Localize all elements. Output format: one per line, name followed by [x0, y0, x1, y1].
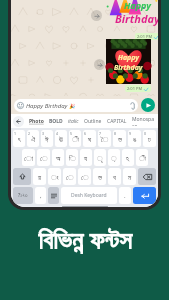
button[interactable]: 0 — [143, 130, 156, 147]
staticText: ভ — [118, 136, 122, 143]
button[interactable]: CAPITAL — [105, 116, 129, 127]
staticText: য — [84, 155, 88, 162]
button[interactable]: Happy — [103, 0, 158, 32]
staticText: 8 — [114, 131, 117, 136]
staticText: ে — [66, 174, 74, 181]
button[interactable]: Forward — [91, 10, 102, 21]
staticText: italic — [68, 118, 79, 125]
staticText: ি — [69, 155, 76, 162]
button[interactable]: 4 — [55, 130, 67, 147]
staticText: ভ — [98, 174, 102, 181]
button[interactable]: 3 — [41, 130, 53, 147]
button[interactable]: italic — [66, 116, 81, 127]
staticText: ে — [81, 174, 89, 181]
staticText: 2:01 PM — [127, 86, 143, 91]
button[interactable]: ী — [136, 149, 148, 166]
button[interactable]: 7 — [98, 130, 111, 147]
button[interactable]: ৃ — [94, 149, 106, 166]
staticText: BOLD — [49, 118, 63, 125]
staticText: 5 — [70, 131, 73, 136]
staticText: 2:01 PM — [137, 34, 153, 39]
button[interactable]: Happy Birthday — [14, 99, 138, 112]
button[interactable]: ় — [108, 149, 120, 166]
staticText: 2 — [28, 131, 31, 136]
button[interactable]: 8 — [113, 130, 126, 147]
button[interactable]: Monospace — [130, 114, 157, 128]
staticText: ় — [111, 155, 117, 162]
staticText: CAPITAL — [107, 118, 127, 125]
staticText: ী — [139, 155, 146, 162]
staticText: ম — [128, 174, 132, 181]
button[interactable]: Language — [48, 187, 59, 204]
button[interactable]: ে — [63, 168, 76, 185]
staticText: ৎ — [18, 136, 21, 143]
button[interactable]: ে — [37, 149, 50, 166]
button[interactable]: ?১২৩ — [13, 187, 33, 204]
button[interactable]: Outline — [82, 116, 104, 127]
staticText: Birthday — [115, 11, 158, 26]
staticText: বিভিন্ন ফন্টস — [38, 222, 132, 256]
button[interactable]: . — [119, 187, 131, 204]
button[interactable]: ভ — [93, 168, 106, 185]
staticText: ঘ — [88, 136, 92, 143]
staticText: ঙ — [133, 136, 137, 143]
button[interactable]: 2 — [27, 130, 39, 147]
staticText: 9 — [129, 131, 132, 136]
staticText: 0 — [144, 131, 147, 136]
staticText: 3 — [42, 131, 45, 136]
staticText: ং — [51, 174, 59, 181]
staticText: Happy — [118, 53, 139, 63]
button[interactable]: ঽ — [122, 149, 134, 166]
button[interactable]: , — [35, 187, 46, 204]
button[interactable]: ং — [48, 168, 61, 185]
staticText: ৈ — [101, 136, 109, 143]
button[interactable]: BOLD — [47, 116, 65, 127]
staticText: য় — [38, 174, 42, 181]
staticText: ঐ — [31, 136, 36, 143]
staticText: Outline — [84, 118, 102, 125]
staticText: ঽ — [126, 155, 130, 162]
staticText: 1 — [14, 131, 17, 136]
button[interactable]: Happy — [106, 39, 151, 84]
staticText: 6 — [84, 131, 87, 136]
button[interactable]: Back — [13, 116, 24, 127]
staticText: ঈ — [45, 136, 49, 143]
button[interactable]: Send — [141, 98, 155, 112]
button[interactable]: অ — [52, 149, 64, 166]
button[interactable]: ব — [108, 168, 121, 185]
staticText: Happy Birthday — [26, 102, 68, 110]
button[interactable]: য় — [33, 168, 46, 185]
button[interactable]: ি — [66, 149, 78, 166]
button[interactable]: ো — [22, 149, 35, 166]
staticText: , — [40, 192, 42, 200]
button[interactable]: Photo — [27, 116, 46, 127]
button[interactable]: ে — [78, 168, 91, 185]
button[interactable]: 5 — [69, 130, 81, 147]
button[interactable]: Enter — [133, 187, 156, 204]
staticText: ঢ — [148, 136, 151, 143]
button[interactable]: Forward — [94, 59, 105, 70]
button[interactable]: 9 — [128, 130, 141, 147]
staticText: ৃ — [97, 155, 103, 162]
staticText: 7 — [99, 131, 102, 136]
staticText: Photo — [29, 118, 44, 125]
staticText: Happy — [124, 0, 151, 11]
other: Attach — [130, 102, 135, 110]
staticText: Birthday — [114, 63, 143, 73]
staticText: Monospace — [132, 116, 155, 126]
staticText: 4 — [56, 131, 59, 136]
staticText: 🎉 — [69, 103, 76, 109]
button[interactable]: Backspace — [138, 168, 156, 185]
staticText: ী — [72, 136, 79, 143]
button[interactable]: ম — [123, 168, 136, 185]
staticText: . — [124, 192, 126, 200]
staticText: অ — [56, 155, 61, 162]
staticText: Desh Keyboard — [71, 192, 107, 199]
button[interactable]: 1 — [13, 130, 25, 147]
button[interactable]: য — [80, 149, 92, 166]
staticText: ঊ — [59, 136, 63, 143]
button[interactable]: Shift — [13, 168, 31, 185]
button[interactable]: Desh Keyboard — [61, 187, 117, 204]
staticText: ব — [113, 174, 116, 181]
button[interactable]: 6 — [83, 130, 96, 147]
